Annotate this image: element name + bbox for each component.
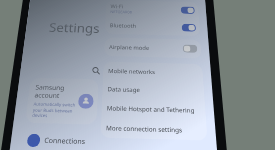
staticText: Automatically switch your Buds between d… (32, 101, 76, 119)
button[interactable]: Mobile Hotspot and Tethering (101, 98, 206, 120)
staticText: Bluetooth (110, 22, 136, 29)
button[interactable]: Bluetooth (105, 17, 200, 36)
button[interactable]: Wi-Fi (105, 0, 199, 19)
staticText: Settings (48, 19, 101, 36)
staticText: Mobile Hotspot and Tethering (107, 104, 195, 115)
button[interactable]: Wi-Fi on (181, 6, 195, 14)
staticText: Connections (44, 135, 85, 146)
button[interactable]: Airplane mode (104, 37, 202, 58)
staticText: NETGEAR08 (110, 10, 133, 15)
button[interactable]: More connection settings (100, 117, 208, 141)
staticText: Samsung account (34, 83, 65, 100)
button[interactable]: Mobile networks (103, 62, 203, 82)
button[interactable]: Samsung account (25, 78, 99, 125)
staticText: More connection settings (106, 124, 183, 134)
staticText: Mobile networks (108, 67, 155, 76)
button[interactable]: Connections (19, 131, 95, 150)
button[interactable]: Airplane mode off (182, 44, 197, 53)
button[interactable]: Bluetooth on (181, 24, 196, 32)
staticText: Wi-Fi (110, 3, 123, 10)
button[interactable]: Data usage (102, 79, 205, 101)
button[interactable]: Search (90, 65, 101, 76)
staticText: Airplane mode (109, 44, 150, 52)
staticText: Data usage (107, 85, 140, 94)
